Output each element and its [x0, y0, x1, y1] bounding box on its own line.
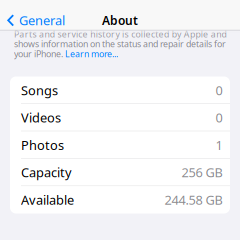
- staticText: Learn more...: [65, 49, 118, 59]
- staticText: Capacity: [21, 163, 72, 182]
- staticText: About: [102, 11, 138, 29]
- staticText: Videos: [21, 108, 61, 127]
- staticText: shows information on the status and repa…: [14, 39, 226, 49]
- staticText: Songs: [21, 81, 58, 100]
- staticText: Photos: [21, 135, 64, 155]
- staticText: Parts and service history is collected b…: [14, 29, 226, 39]
- staticText: General: [19, 11, 65, 30]
- button[interactable]: Learn more...: [65, 49, 118, 59]
- staticText: your iPhone.: [14, 49, 65, 59]
- staticText: 0: [215, 108, 222, 127]
- staticText: 256 GB: [181, 163, 222, 182]
- staticText: Available: [21, 190, 74, 209]
- staticText: 244.58 GB: [164, 190, 222, 209]
- staticText: 1: [215, 135, 222, 155]
- button[interactable]: Back: [0, 5, 65, 35]
- staticText: 0: [215, 81, 222, 100]
